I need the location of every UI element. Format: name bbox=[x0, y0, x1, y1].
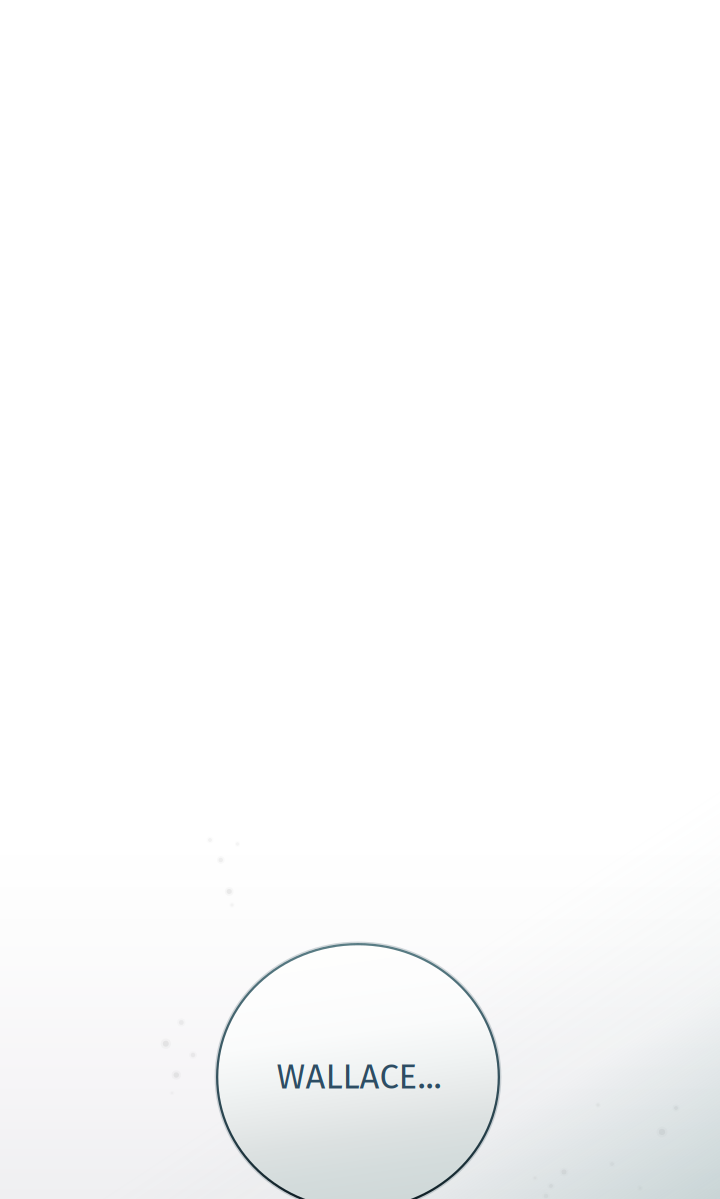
button[interactable]: Comic panel, Wallace… bbox=[0, 0, 720, 1199]
staticText: WALLACE... bbox=[276, 1056, 441, 1098]
